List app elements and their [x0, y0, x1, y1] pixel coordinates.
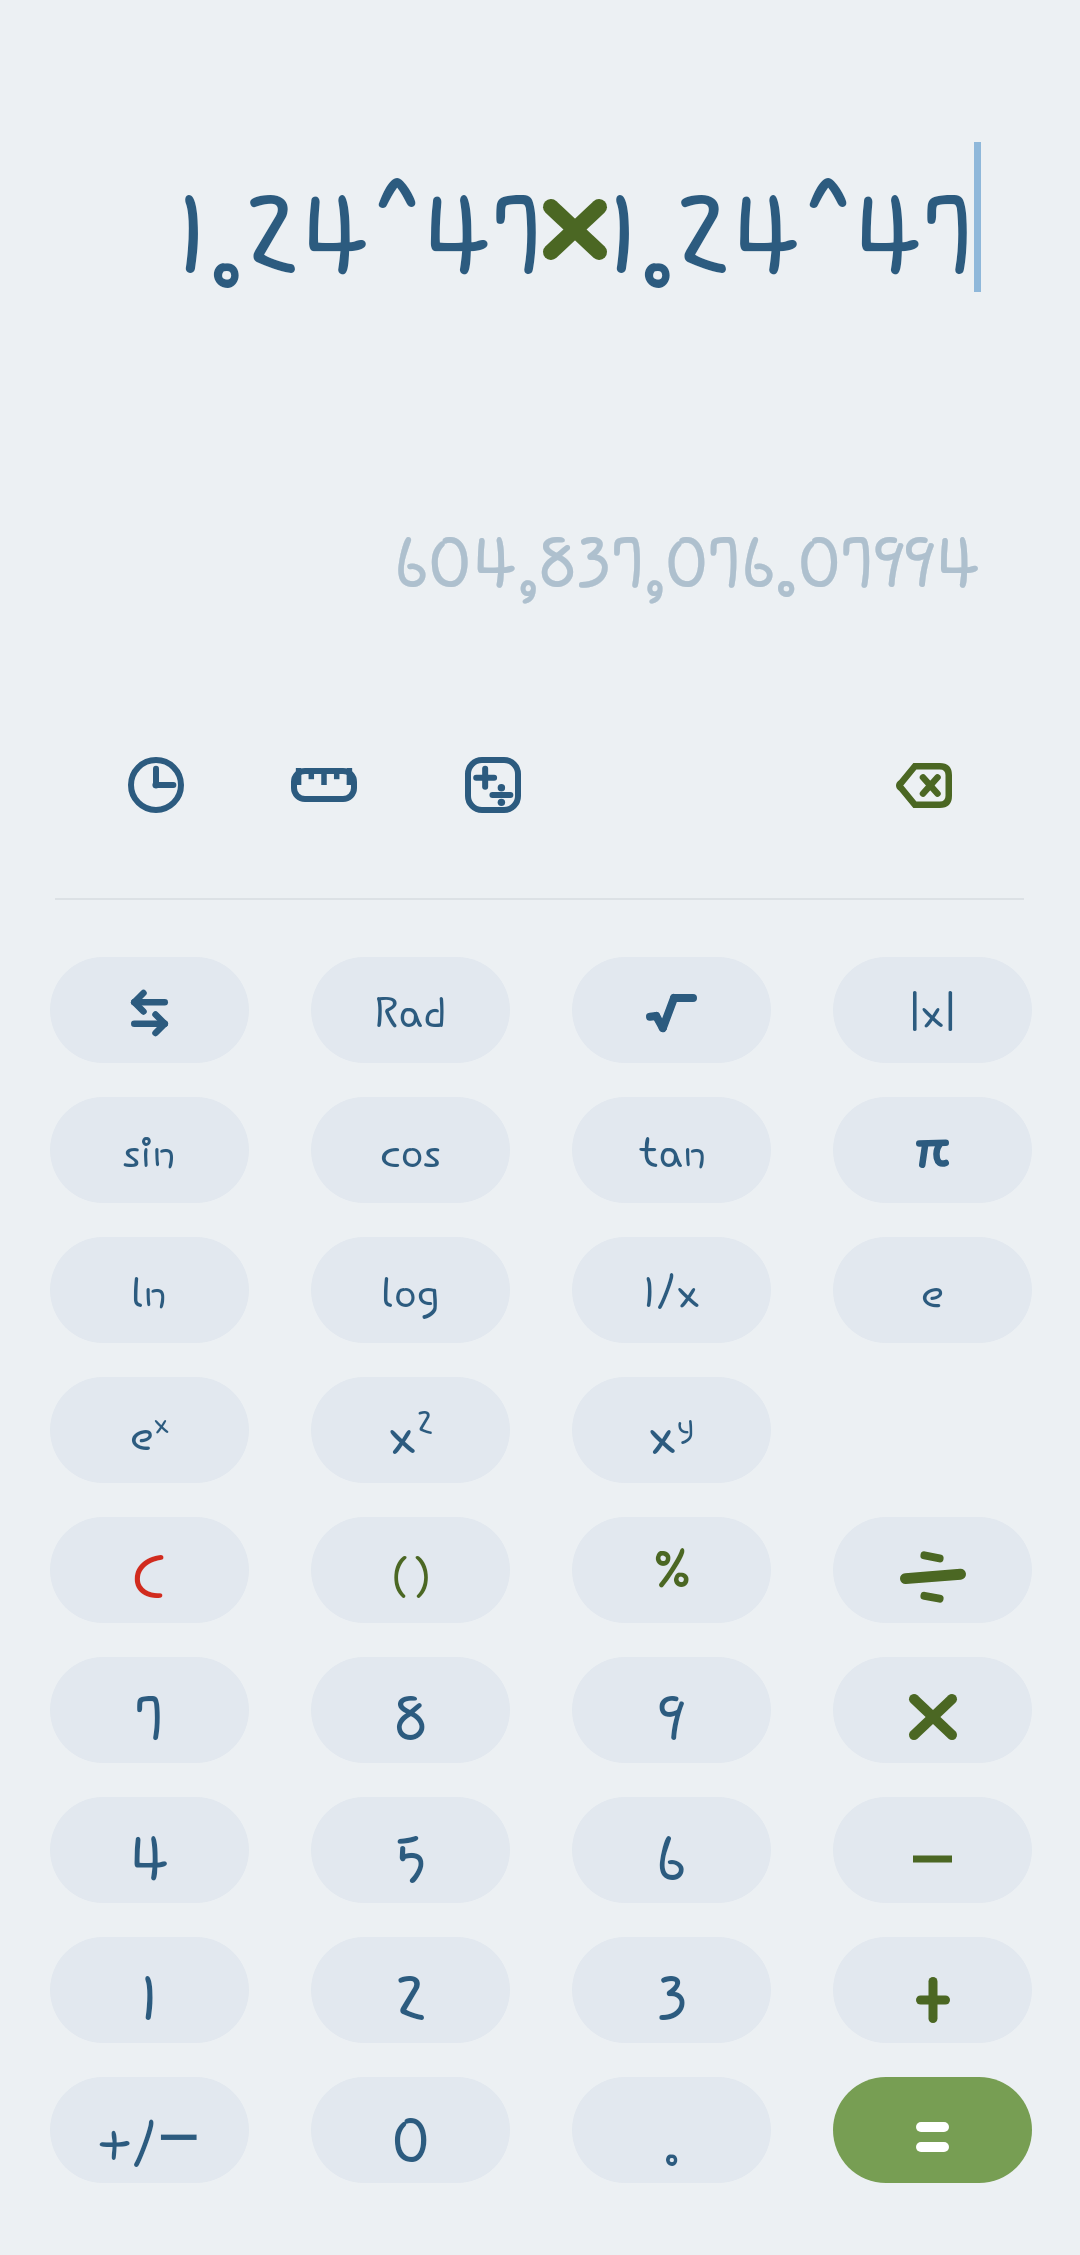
staticText: tan	[638, 1127, 706, 1187]
button[interactable]: 2	[311, 1937, 510, 2043]
button[interactable]	[833, 2077, 1032, 2183]
staticText: C	[132, 1541, 167, 1623]
staticText: log	[382, 1267, 440, 1327]
staticText: ()	[391, 1552, 435, 1614]
staticText: .	[664, 2113, 680, 2183]
button[interactable]: 1	[50, 1937, 249, 2043]
button[interactable]: Backspace	[885, 747, 961, 823]
button[interactable]: cos	[311, 1097, 510, 1203]
button[interactable]: 9	[572, 1657, 771, 1763]
button[interactable]: Rad	[311, 957, 510, 1063]
button[interactable]: 6	[572, 1797, 771, 1903]
staticText: %	[652, 1537, 692, 1615]
staticText: 1.24^47	[607, 171, 974, 325]
staticText: 2	[395, 1962, 427, 2043]
staticText: 1.24^47	[176, 171, 543, 325]
button[interactable]: Calculator mode	[455, 747, 531, 823]
staticText: 3	[656, 1962, 688, 2043]
button[interactable]: sin	[50, 1097, 249, 1203]
button[interactable]: |x|	[833, 957, 1032, 1063]
staticText: 7	[135, 1682, 164, 1763]
button[interactable]: ()	[311, 1517, 510, 1623]
staticText: 6O4,837,O76.O7994	[0, 521, 981, 621]
button[interactable]: 3	[572, 1937, 771, 2043]
button[interactable]: xy	[572, 1377, 771, 1483]
button[interactable]: O	[311, 2077, 510, 2183]
staticText: 9	[658, 1682, 685, 1763]
staticText: 4	[129, 1822, 170, 1903]
staticText: 1/x	[643, 1267, 701, 1327]
button[interactable]: e	[833, 1237, 1032, 1343]
button[interactable]: ex	[50, 1377, 249, 1483]
button[interactable]: 7	[50, 1657, 249, 1763]
button[interactable]: 5	[311, 1797, 510, 1903]
button[interactable]: tan	[572, 1097, 771, 1203]
button[interactable]: Unit converter	[286, 747, 362, 823]
button[interactable]: log	[311, 1237, 510, 1343]
staticText: ln	[132, 1267, 167, 1327]
staticText: x2	[388, 1403, 434, 1478]
button[interactable]: 8	[311, 1657, 510, 1763]
button[interactable]	[572, 957, 771, 1063]
staticText: cos	[380, 1127, 442, 1187]
button[interactable]: History	[118, 747, 194, 823]
button[interactable]	[833, 1797, 1032, 1903]
staticText: 8	[394, 1682, 427, 1763]
button[interactable]: 4	[50, 1797, 249, 1903]
staticText: 1	[140, 1962, 160, 2043]
button[interactable]: .	[572, 2077, 771, 2183]
button[interactable]: C	[50, 1517, 249, 1623]
button[interactable]: ln	[50, 1237, 249, 1343]
staticText: sin	[123, 1127, 176, 1187]
staticText: +/−	[98, 2083, 201, 2183]
button[interactable]: +/−	[50, 2077, 249, 2183]
staticText: |x|	[909, 987, 956, 1047]
staticText: 6	[656, 1822, 687, 1903]
button[interactable]	[833, 1657, 1032, 1763]
staticText: O	[392, 2104, 430, 2183]
staticText: xy	[648, 1403, 695, 1478]
button[interactable]: %	[572, 1517, 771, 1623]
staticText: 5	[395, 1822, 427, 1903]
button[interactable]	[833, 1517, 1032, 1623]
button[interactable]	[833, 1097, 1032, 1203]
button[interactable]: x2	[311, 1377, 510, 1483]
button[interactable]: 1/x	[572, 1237, 771, 1343]
staticText: e	[921, 1267, 944, 1327]
staticText: Rad	[374, 987, 447, 1047]
button[interactable]	[50, 957, 249, 1063]
button[interactable]	[833, 1937, 1032, 2043]
staticText: ex	[130, 1406, 170, 1471]
